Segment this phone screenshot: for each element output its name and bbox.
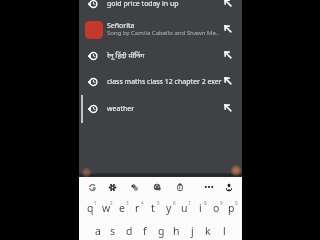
other: Recent search [88,77,98,87]
button[interactable]: l [216,218,232,240]
button[interactable]: y [161,195,177,217]
staticText: a [95,224,101,238]
staticText: r [135,201,140,215]
button[interactable]: i [192,195,208,217]
staticText: class maths class 12 chapter 2 exer [107,77,225,87]
staticText: gold price today in up [107,0,225,9]
button[interactable]: Google search [83,178,101,196]
button[interactable]: w [98,195,114,217]
staticText: o [213,201,220,215]
staticText: 5 [157,200,160,206]
button[interactable]: Voice input [220,178,238,196]
other: Recent search [88,0,98,9]
button[interactable]: q [82,195,98,217]
staticText: j [191,224,194,238]
staticText: i [199,201,202,215]
other: Insert suggestion [224,25,232,33]
staticText: u [181,201,188,215]
staticText: q [87,201,94,215]
staticText: y [166,201,172,215]
staticText: g [158,224,165,238]
other: Recent search [88,104,98,114]
button[interactable]: j [184,218,200,240]
staticText: 7 [188,200,191,206]
button[interactable]: Señorita [79,16,242,44]
button[interactable]: r [129,195,145,217]
button[interactable]: t [145,195,161,217]
staticText: f [143,224,147,238]
button[interactable]: g [153,218,169,240]
button[interactable]: Clipboard [171,178,189,196]
staticText: 9 [220,200,223,206]
button[interactable]: Recent search [79,69,242,95]
staticText: 2 [110,200,113,206]
button[interactable]: Recent search [79,0,242,17]
other: Insert suggestion [224,0,232,7]
staticText: weather [107,104,225,114]
staticText: w [102,201,111,215]
staticText: h [173,224,180,238]
other: Recent search [88,51,98,61]
button[interactable]: f [137,218,153,240]
staticText: Song by Camila Cabello and Shawn Me.. [107,29,237,37]
button[interactable]: More options [200,178,218,196]
staticText: 6 [173,200,176,206]
staticText: 3 [126,200,129,206]
button[interactable]: Recent search [79,96,242,122]
staticText: 0 [235,200,238,206]
button[interactable]: d [121,218,137,240]
button[interactable]: h [168,218,184,240]
staticText: e [119,201,125,215]
button[interactable]: u [176,195,192,217]
other: Insert suggestion [224,51,232,59]
staticText: Señorita [107,21,135,31]
button[interactable]: Recent search [79,43,242,69]
staticText: k [205,224,211,238]
button[interactable]: a [90,218,106,240]
staticText: d [126,224,133,238]
staticText: 4 [141,200,144,206]
button[interactable]: s [105,218,121,240]
staticText: l [223,224,226,238]
staticText: t [151,201,155,215]
button[interactable]: Stickers [125,178,143,196]
button[interactable]: k [200,218,216,240]
staticText: 8 [204,200,207,206]
button[interactable]: Keyboard settings [103,178,121,196]
button[interactable]: o [208,195,224,217]
button[interactable]: p [223,195,239,217]
other: Insert suggestion [224,104,232,112]
staticText: s [110,224,116,238]
other: Insert suggestion [224,77,232,85]
staticText: p [228,201,235,215]
button[interactable]: e [114,195,130,217]
staticText: रेनू हिंदी मीनिंग [107,51,225,61]
staticText: 1 [94,200,97,206]
button[interactable]: Themes [148,178,166,196]
